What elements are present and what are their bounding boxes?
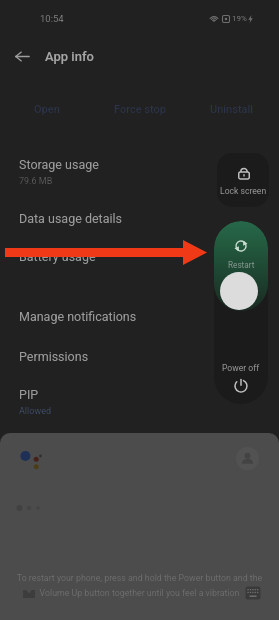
staticText: Open [34, 103, 60, 116]
button[interactable]: PIP [0, 387, 279, 423]
staticText: 10:54 [40, 13, 64, 24]
button[interactable]: Back [0, 36, 45, 76]
staticText: Permissions [19, 349, 89, 364]
button[interactable]: Assistant [14, 443, 50, 479]
staticText: Battery usage [19, 249, 96, 264]
staticText: To restart your phone, press and hold th… [0, 573, 279, 598]
staticText: PIP [19, 387, 39, 402]
button[interactable]: Account [236, 447, 259, 470]
button[interactable]: Storage usage [0, 157, 279, 193]
button[interactable]: Screenshot [22, 586, 36, 599]
button[interactable]: Manage notifications [0, 309, 279, 337]
staticText: Manage notifications [19, 309, 137, 324]
button[interactable]: Restart [214, 221, 268, 311]
button[interactable]: Force stop [95, 99, 185, 119]
button[interactable]: Battery usage [0, 249, 279, 277]
staticText: Storage usage [19, 157, 99, 172]
button[interactable]: Data usage details [0, 211, 279, 239]
button[interactable]: Lock screen [217, 153, 269, 207]
staticText: Data usage details [19, 211, 122, 226]
button[interactable]: Keyboard [245, 586, 261, 600]
staticText: App info [45, 49, 94, 64]
staticText: Lock screen [220, 186, 267, 196]
button[interactable]: Power off [214, 363, 268, 394]
staticText: Restart [228, 260, 255, 270]
staticText: 79.6 MB [19, 176, 53, 187]
staticText: Allowed [19, 406, 51, 417]
staticText: Power off [222, 363, 260, 373]
button[interactable]: Open [2, 99, 92, 119]
button[interactable]: Uninstall [187, 99, 277, 119]
staticText: Force stop [114, 103, 166, 116]
staticText: 19% [232, 14, 247, 23]
staticText: Uninstall [210, 103, 254, 116]
button[interactable]: Permissions [0, 349, 279, 377]
